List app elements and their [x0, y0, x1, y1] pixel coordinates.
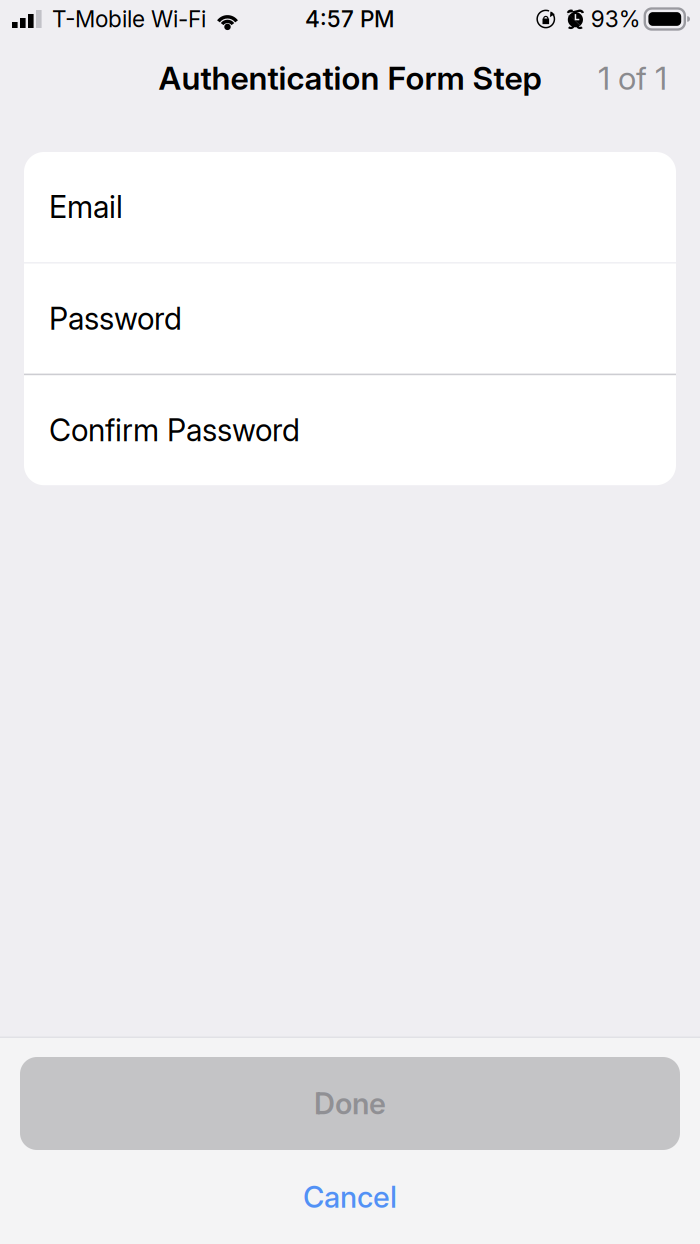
- button[interactable]: Email: [24, 152, 676, 262]
- button[interactable]: Cancel: [0, 1150, 700, 1226]
- button[interactable]: Confirm Password: [24, 375, 676, 485]
- staticText: Email: [49, 189, 123, 225]
- button[interactable]: Password: [24, 264, 676, 374]
- staticText: 1 of 1: [598, 59, 667, 97]
- staticText: 4:57 PM: [305, 5, 395, 33]
- button[interactable]: Done: [0, 1057, 700, 1150]
- staticText: Confirm Password: [49, 412, 300, 449]
- staticText: Cancel: [303, 1179, 397, 1215]
- staticText: Done: [314, 1086, 386, 1121]
- staticText: 93%: [591, 5, 641, 33]
- staticText: Password: [49, 300, 182, 337]
- staticText: Authentication Form Step: [158, 59, 541, 97]
- staticText: T-Mobile Wi-Fi: [52, 5, 206, 33]
